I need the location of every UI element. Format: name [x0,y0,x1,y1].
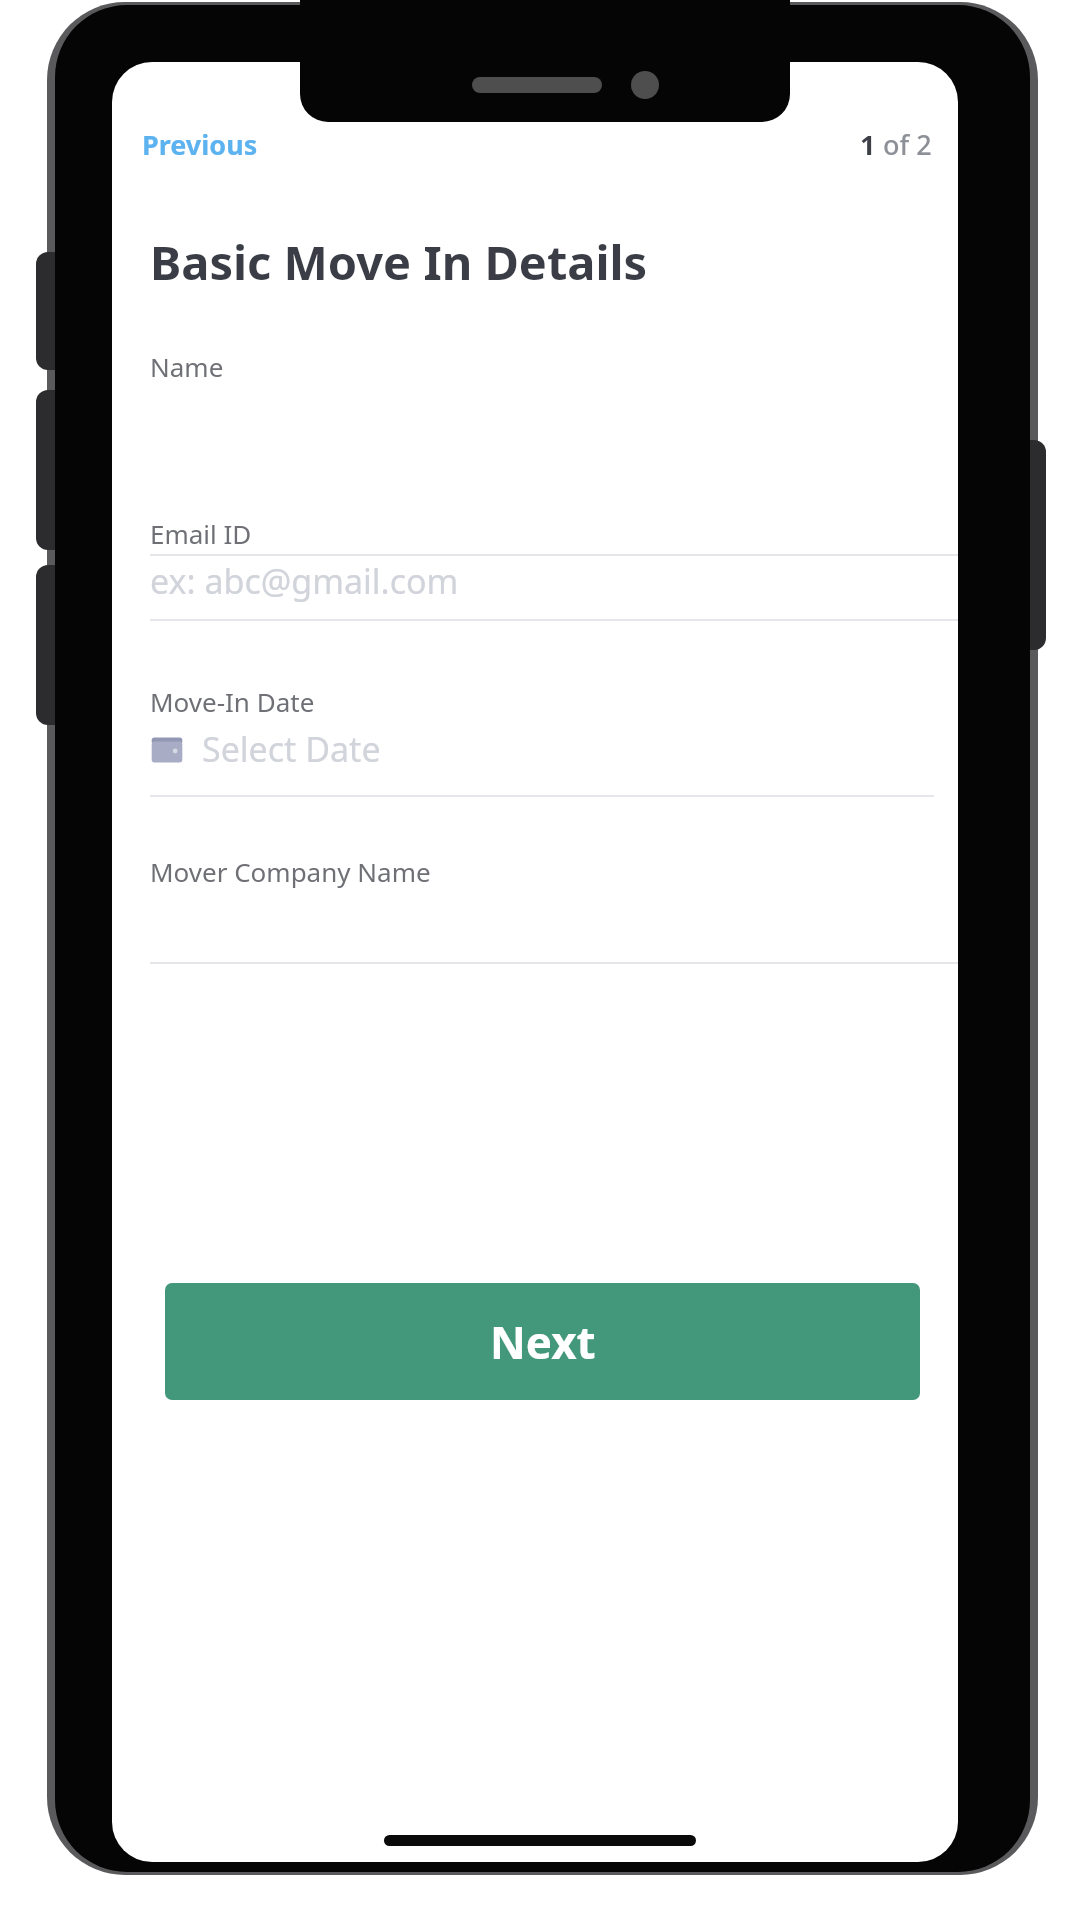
button[interactable] [142,726,944,801]
staticText: ex: abc@gmail.com [150,558,459,604]
staticText: Move-In Date [150,684,315,719]
staticText: Previous [142,126,258,163]
button[interactable]: 1 [812,122,932,167]
staticText: Select Date [202,726,381,772]
staticText: Basic Move In Details [150,230,648,294]
button[interactable] [142,391,958,560]
staticText: Name [150,349,224,384]
staticText: Next [490,1312,596,1372]
staticText: Email ID [150,516,252,551]
button[interactable] [142,896,958,968]
button[interactable]: Previous [138,122,262,167]
other: Select date [150,734,184,768]
button[interactable] [142,558,958,625]
staticText: of 2 [883,126,932,163]
button[interactable]: Next [165,1283,920,1400]
staticText: Mover Company Name [150,854,431,889]
staticText: 1 [860,126,883,163]
